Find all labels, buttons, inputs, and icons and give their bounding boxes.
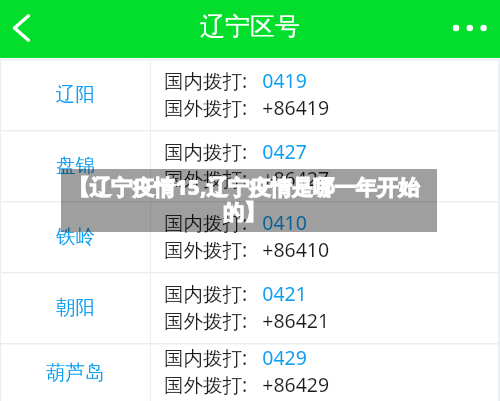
button[interactable]: 辽阳	[0, 59, 500, 130]
button[interactable]: Back	[0, 6, 44, 50]
staticText: 葫芦岛	[46, 360, 105, 385]
staticText: 盘锦	[56, 153, 95, 178]
staticText: 国外拨打:+86427	[164, 165, 330, 192]
staticText: 【辽宁疫情15,辽宁疫情是哪一年开始的】	[56, 172, 432, 226]
staticText: 国内拨打:0419	[164, 67, 307, 94]
button[interactable]: 盘锦	[0, 130, 500, 201]
button[interactable]: 铁岭	[0, 201, 500, 272]
staticText: 辽阳	[56, 82, 95, 107]
staticText: 辽宁区号	[200, 11, 300, 42]
staticText: 朝阳	[56, 295, 95, 320]
staticText: 国外拨打:+86410	[164, 236, 330, 263]
staticText: 国内拨打:0427	[164, 138, 307, 165]
staticText: 国外拨打:+86419	[164, 94, 330, 121]
staticText: 国外拨打:+86429	[164, 371, 330, 398]
button[interactable]: More options	[446, 6, 500, 50]
button[interactable]: 葫芦岛	[0, 343, 500, 401]
staticText: 国内拨打:0410	[164, 209, 307, 236]
staticText: 国内拨打:0429	[164, 344, 307, 371]
staticText: 国外拨打:+86421	[164, 307, 330, 334]
staticText: 铁岭	[56, 224, 95, 249]
staticText: 国内拨打:0421	[164, 280, 307, 307]
button[interactable]: 朝阳	[0, 272, 500, 343]
